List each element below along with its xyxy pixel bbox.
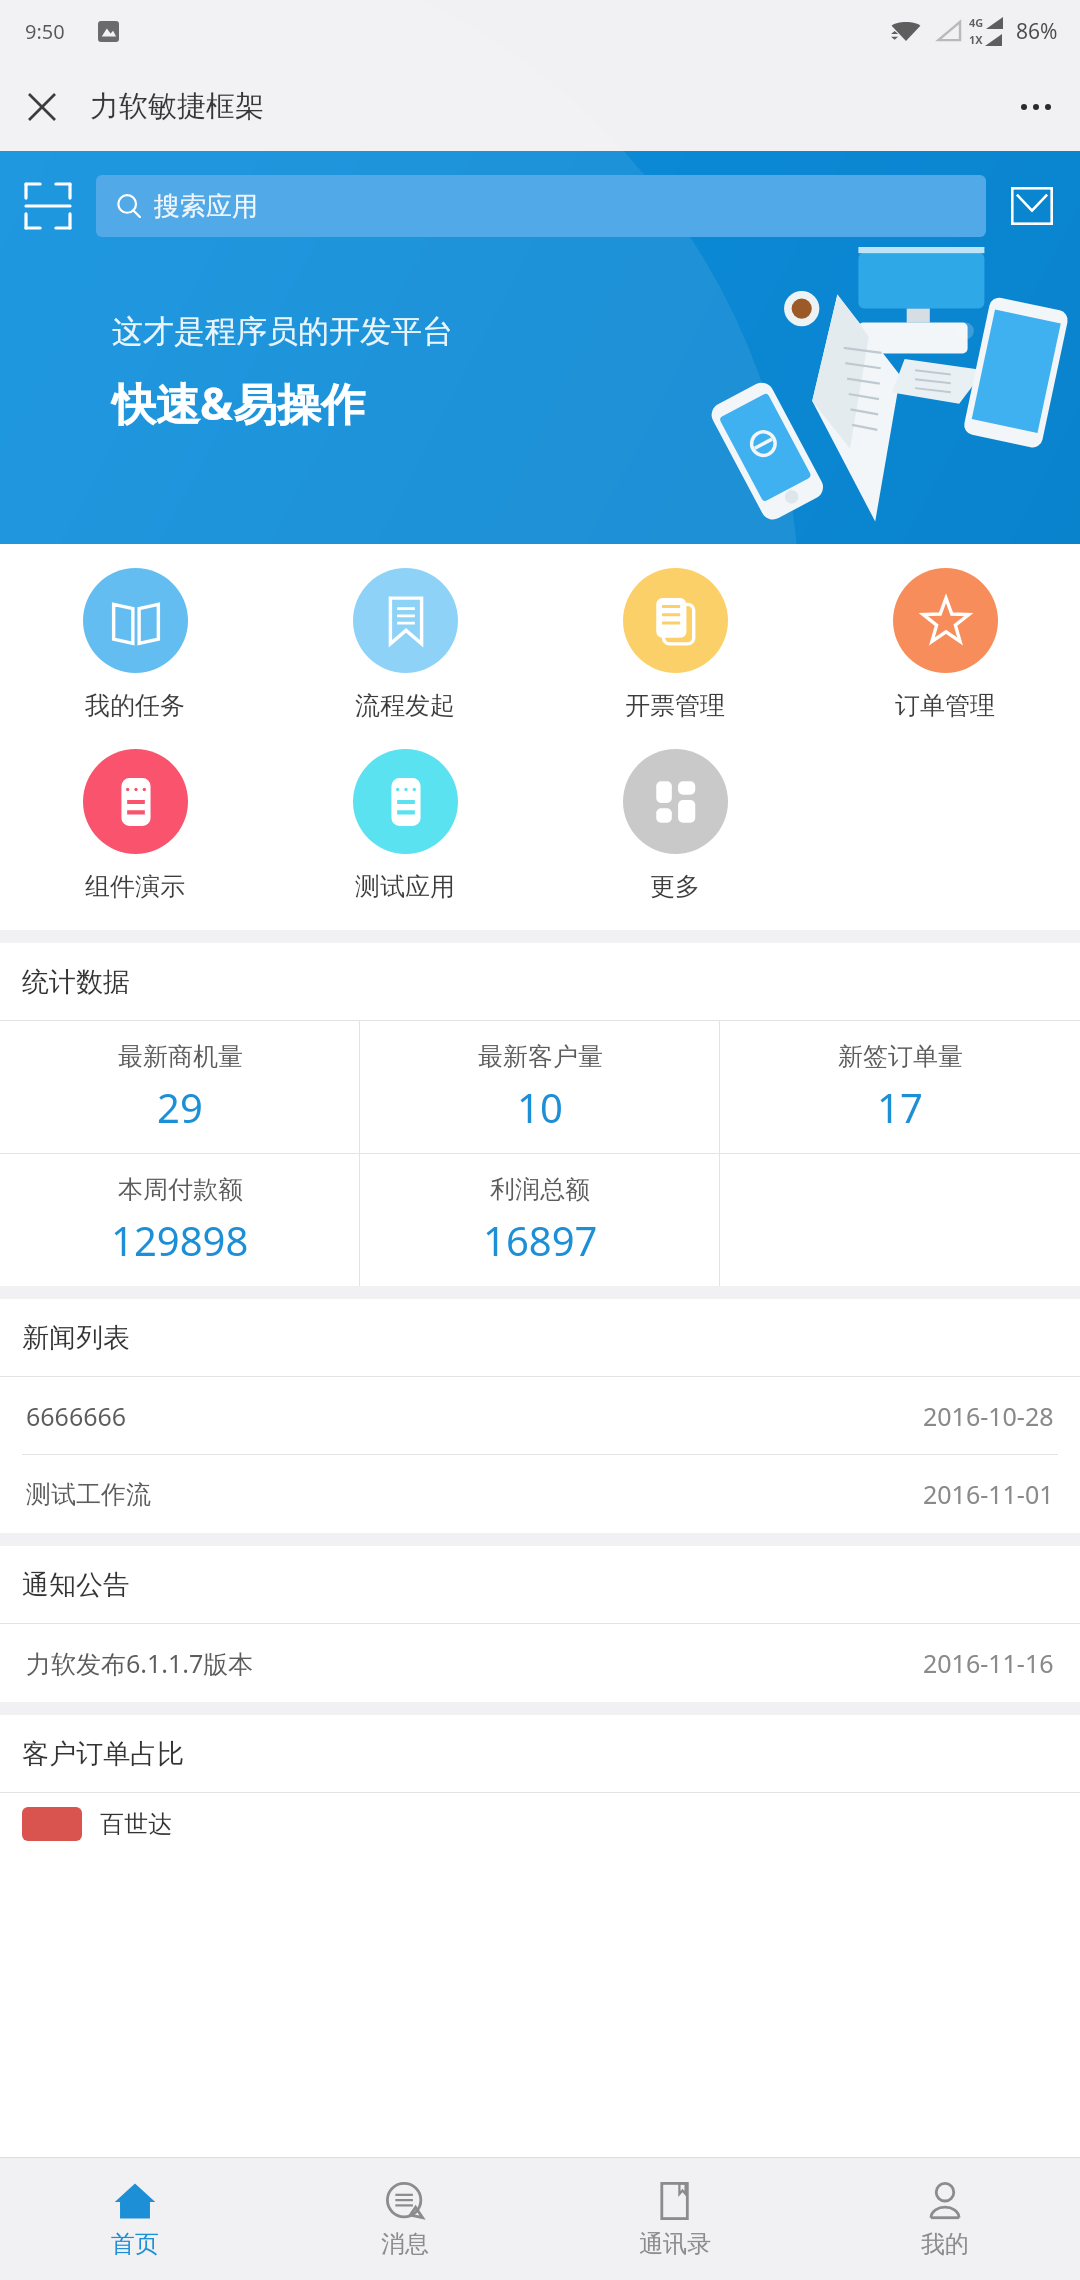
button[interactable]: 消息 (270, 2158, 540, 2280)
button[interactable]: 搜索应用 (96, 175, 986, 237)
staticText: 更多 (650, 871, 700, 902)
staticText: 我的 (921, 2229, 969, 2259)
staticText: 最新商机量 (118, 1041, 243, 1072)
staticText: 组件演示 (85, 871, 185, 902)
staticText: 4G (969, 15, 984, 30)
button[interactable]: 最新商机量 (0, 1021, 360, 1153)
staticText: 最新客户量 (478, 1041, 603, 1072)
staticText: 利润总额 (490, 1174, 590, 1205)
button[interactable]: 订单管理 (810, 562, 1080, 727)
button[interactable]: More options (1006, 77, 1066, 137)
button[interactable]: 本周付款额 (0, 1154, 360, 1286)
staticText: 开票管理 (625, 690, 725, 721)
staticText: 客户订单占比 (22, 1737, 184, 1771)
staticText: 6666666 (26, 1399, 127, 1433)
staticText: 29 (157, 1080, 203, 1134)
staticText: 通讯录 (639, 2229, 711, 2259)
staticText: 17 (877, 1080, 923, 1134)
staticText: 消息 (381, 2229, 429, 2259)
staticText: 测试应用 (355, 871, 455, 902)
button[interactable]: 通讯录 (540, 2158, 810, 2280)
staticText: 新签订单量 (838, 1041, 963, 1072)
staticText: 快速&易操作 (112, 373, 365, 433)
staticText: 我的任务 (85, 690, 185, 721)
button[interactable]: 我的任务 (0, 562, 270, 727)
staticText: 百世达 (100, 1809, 172, 1839)
button[interactable]: 流程发起 (270, 562, 540, 727)
button[interactable]: Scan QR code (22, 180, 74, 232)
staticText: 16897 (483, 1213, 598, 1267)
staticText: 搜索应用 (154, 190, 258, 223)
button[interactable]: 6666666 (0, 1377, 1080, 1455)
staticText: 1X (969, 32, 983, 47)
staticText: 订单管理 (895, 690, 995, 721)
staticText: 2016-11-16 (923, 1646, 1054, 1680)
button[interactable]: 测试工作流 (0, 1455, 1080, 1533)
staticText: 2016-10-28 (923, 1399, 1054, 1433)
button[interactable]: Messages (1006, 180, 1058, 232)
staticText: 统计数据 (22, 965, 130, 999)
button[interactable]: 利润总额 (360, 1154, 720, 1286)
staticText: 力软发布6.1.1.7版本 (26, 1646, 254, 1680)
staticText: 首页 (111, 2229, 159, 2259)
staticText: 新闻列表 (22, 1321, 130, 1355)
staticText: 通知公告 (22, 1568, 130, 1602)
staticText: 9:50 (25, 18, 65, 45)
staticText: 10 (517, 1080, 563, 1134)
button[interactable]: 我的 (810, 2158, 1080, 2280)
staticText: 这才是程序员的开发平台 (112, 312, 453, 351)
staticText: 流程发起 (355, 690, 455, 721)
button[interactable]: Close (14, 79, 70, 135)
staticText: 力软敏捷框架 (90, 88, 264, 125)
staticText: 本周付款额 (118, 1174, 243, 1205)
button[interactable]: 最新客户量 (360, 1021, 720, 1153)
button[interactable]: 开票管理 (540, 562, 810, 727)
staticText: 测试工作流 (26, 1479, 151, 1510)
button[interactable]: 测试应用 (270, 743, 540, 908)
staticText: 129898 (111, 1213, 249, 1267)
staticText: 86% (1016, 17, 1058, 46)
button[interactable]: 首页 (0, 2158, 270, 2280)
button[interactable]: 组件演示 (0, 743, 270, 908)
staticText: 2016-11-01 (923, 1477, 1054, 1511)
button[interactable]: 新签订单量 (720, 1021, 1080, 1153)
button[interactable]: 力软发布6.1.1.7版本 (0, 1624, 1080, 1702)
button[interactable]: 更多 (540, 743, 810, 908)
